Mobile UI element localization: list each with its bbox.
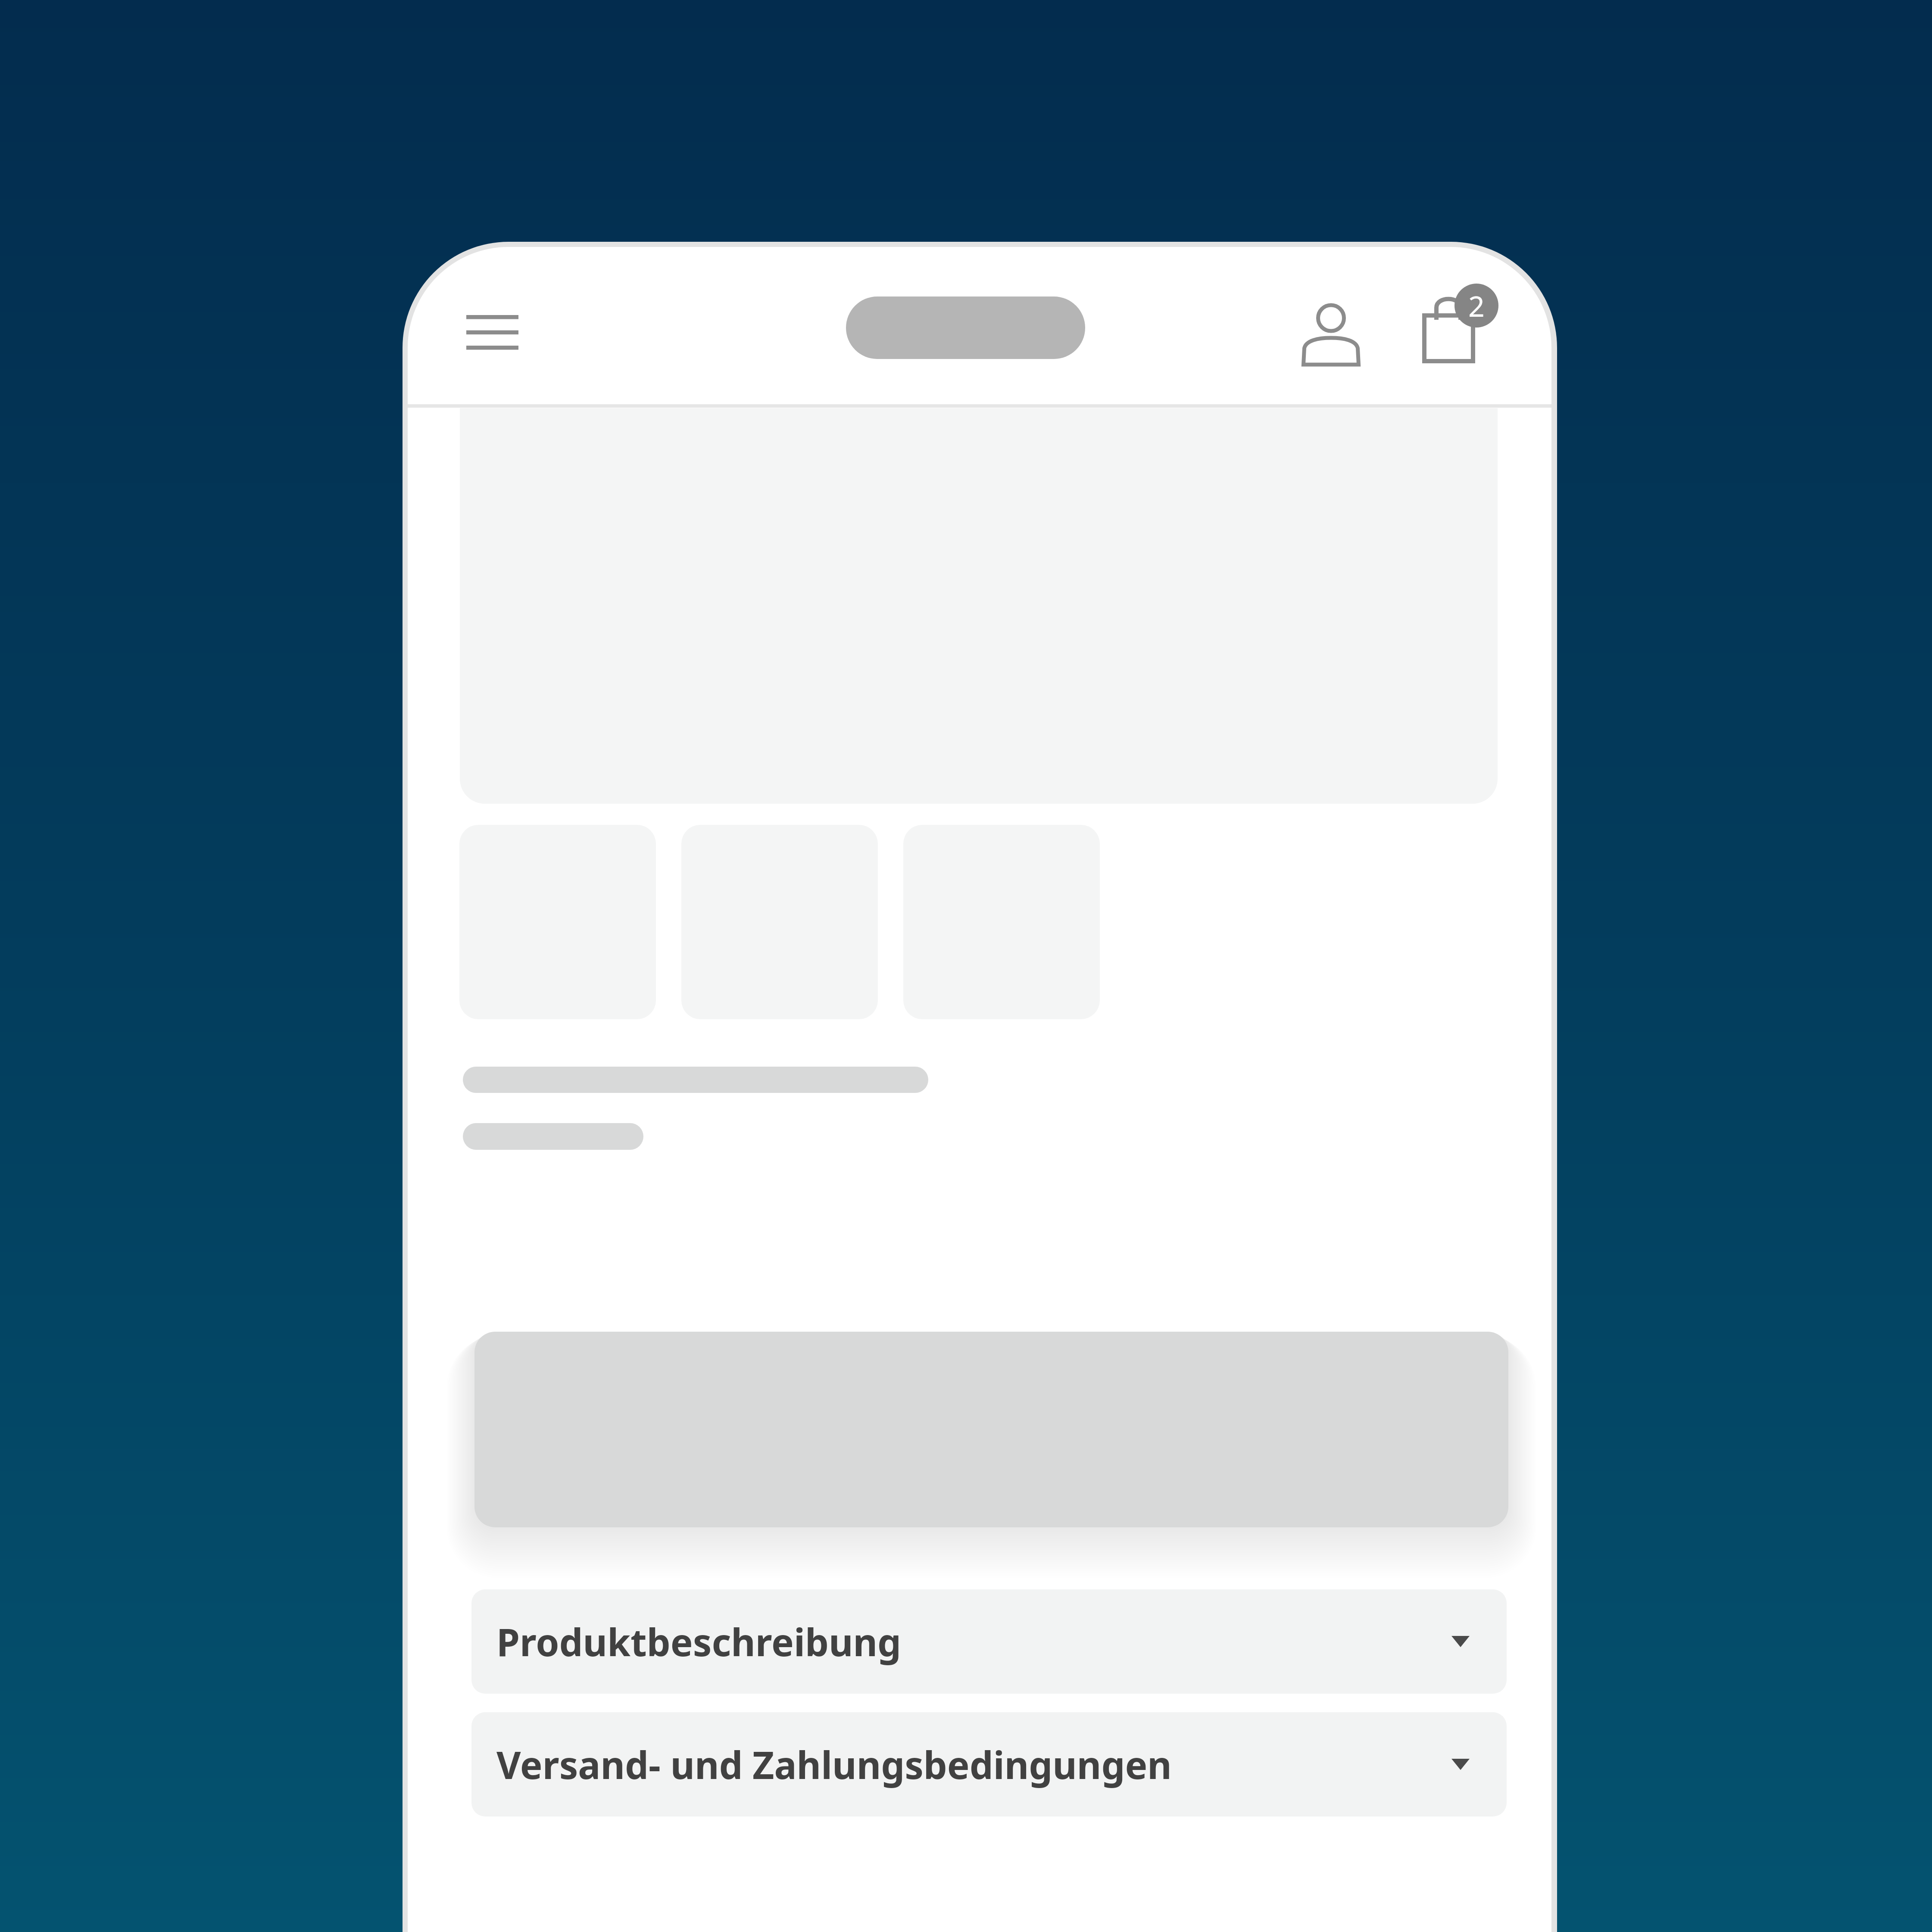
staticText: Produktbeschreibung	[496, 1616, 901, 1667]
staticText: 2	[1468, 286, 1485, 325]
button[interactable]: Produktbeschreibung	[471, 1589, 1507, 1694]
button[interactable]: Open menu	[449, 289, 535, 375]
button[interactable]: Versand- und Zahlungsbedingungen	[471, 1712, 1507, 1817]
button[interactable]: Shop logo, go to home	[846, 297, 1085, 359]
button[interactable]: Shopping bag, 2 items	[1412, 273, 1524, 385]
staticText: Versand- und Zahlungsbedingungen	[496, 1739, 1172, 1790]
button[interactable]: Account	[1279, 282, 1383, 386]
